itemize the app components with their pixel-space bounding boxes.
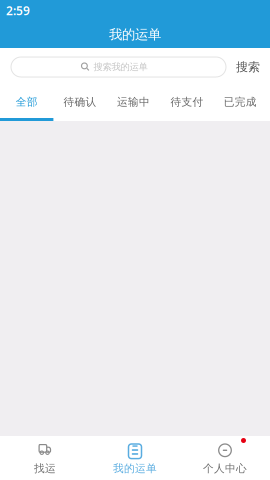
staticText: 搜索 [236,60,260,74]
staticText: 运输中 [117,95,150,108]
button[interactable]: 运输中 [107,86,160,121]
button[interactable]: 搜索 [226,54,270,80]
staticText: 待确认 [64,95,97,108]
staticText: 全部 [16,95,38,108]
staticText: 已完成 [224,95,257,108]
button[interactable]: 已完成 [214,86,267,121]
button[interactable]: 我的运单 [90,436,180,480]
button[interactable]: 找运 [0,436,90,480]
staticText: 我的运单 [109,26,161,43]
staticText: 个人中心 [203,462,247,475]
staticText: 找运 [34,462,56,475]
staticText: 2:59 [6,2,30,18]
button[interactable]: 待确认 [53,86,107,121]
staticText: 我的运单 [113,462,157,475]
staticText: 待支付 [170,95,203,108]
staticText: 搜索我的运单 [93,61,147,73]
button[interactable]: 待支付 [160,86,214,121]
button[interactable]: 全部 [0,86,53,121]
button[interactable]: 个人中心 [180,436,270,480]
